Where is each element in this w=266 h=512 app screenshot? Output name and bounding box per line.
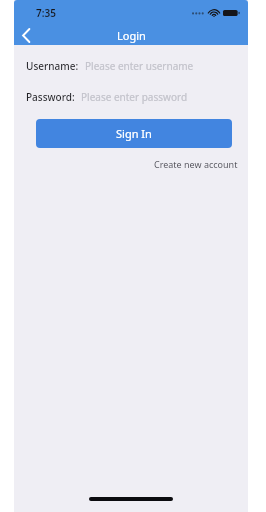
button[interactable]: Sign In (36, 119, 232, 148)
staticText: Username: (26, 59, 79, 73)
staticText: Login (117, 28, 146, 43)
staticText: Please enter password (81, 90, 188, 104)
staticText: Sign In (116, 126, 152, 141)
staticText: Password: (26, 90, 75, 104)
button[interactable]: Username: (14, 58, 248, 74)
button[interactable]: Create new account (154, 158, 238, 170)
staticText: Please enter username (85, 59, 194, 73)
button[interactable]: Password: (14, 89, 248, 105)
staticText: 7:35 (36, 6, 56, 20)
button[interactable]: Back (14, 25, 38, 45)
staticText: Create new account (154, 158, 238, 170)
